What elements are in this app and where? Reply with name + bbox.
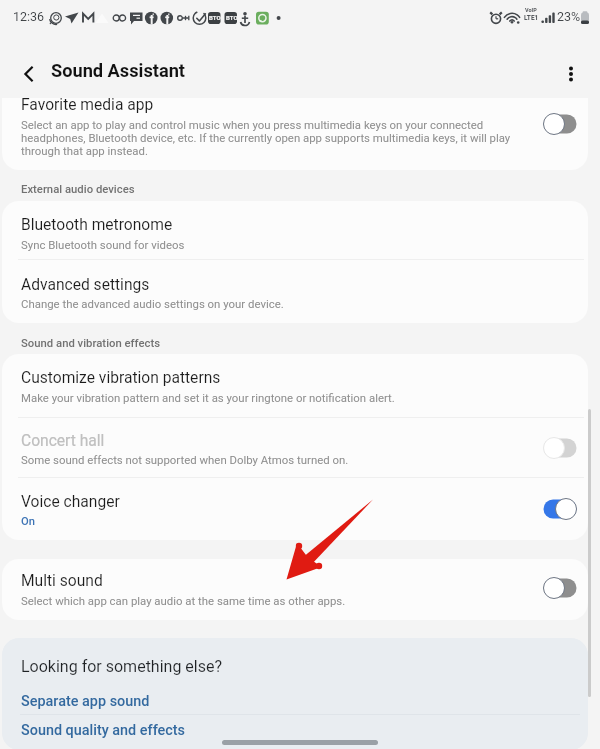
staticText: headphones, Bluetooth device, etc. If th… [21, 131, 511, 144]
staticText: Looking for something else? [21, 657, 223, 676]
staticText: Concert hall [21, 432, 105, 450]
staticText: Change the advanced audio settings on yo… [21, 297, 284, 310]
staticText: Sound and vibration effects [21, 337, 161, 350]
staticText: BTO [209, 14, 221, 21]
staticText: Favorite media app [21, 96, 154, 114]
staticText: BTO [226, 14, 238, 21]
button[interactable]: Toggle [540, 574, 580, 602]
staticText: Voice changer [21, 493, 120, 511]
staticText: Select an app to play and control music … [21, 118, 484, 131]
staticText: Make your vibration pattern and set it a… [21, 391, 395, 404]
staticText: 23% [557, 9, 581, 24]
staticText: Sync Bluetooth sound for videos [21, 238, 185, 251]
button[interactable]: Toggle [540, 495, 580, 523]
staticText: External audio devices [21, 183, 135, 196]
button[interactable] [2, 62, 588, 170]
button[interactable]: More options [552, 55, 590, 93]
button[interactable] [2, 559, 588, 620]
staticText: Some sound effects not supported when Do… [21, 453, 349, 466]
button[interactable]: Toggle [540, 434, 580, 462]
button[interactable]: Back [10, 55, 48, 93]
button[interactable]: Sound quality and effects [21, 722, 186, 739]
staticText: On [21, 515, 35, 528]
staticText: LTE1 [524, 14, 539, 22]
staticText: Select which app can play audio at the s… [21, 594, 346, 607]
button[interactable] [2, 201, 588, 323]
button[interactable]: Separate app sound [21, 693, 150, 710]
staticText: Advanced settings [21, 276, 150, 294]
button[interactable]: Toggle [540, 110, 580, 138]
staticText: Bluetooth metronome [21, 216, 173, 234]
staticText: Multi sound [21, 572, 103, 590]
staticText: VoIP [525, 7, 537, 13]
staticText: Customize vibration patterns [21, 369, 221, 387]
staticText: Sound Assistant [51, 60, 185, 81]
button[interactable] [2, 638, 588, 749]
button[interactable] [2, 354, 588, 540]
staticText: through that app instead. [21, 144, 148, 157]
staticText: 12:36 [13, 9, 45, 24]
